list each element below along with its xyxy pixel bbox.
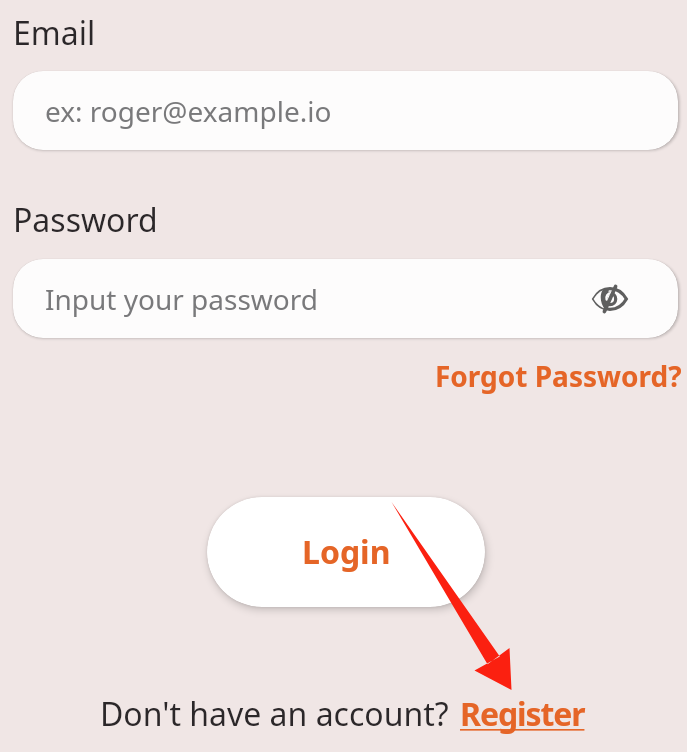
staticText: Input your password (45, 280, 319, 318)
staticText: Email (13, 11, 96, 55)
button[interactable]: Forgot Password? (435, 357, 682, 395)
staticText: ex: roger@example.io (45, 92, 332, 130)
staticText: Login (302, 530, 391, 574)
button[interactable]: Show password (587, 276, 633, 322)
button[interactable]: Input your password (13, 259, 678, 338)
staticText: Register (460, 692, 585, 736)
staticText: Don't have an account? (100, 692, 457, 736)
staticText: Forgot Password? (435, 357, 682, 395)
button[interactable]: Login (207, 497, 485, 607)
button[interactable]: Register (460, 692, 585, 736)
staticText: Password (13, 198, 158, 242)
button[interactable]: ex: roger@example.io (13, 71, 678, 150)
